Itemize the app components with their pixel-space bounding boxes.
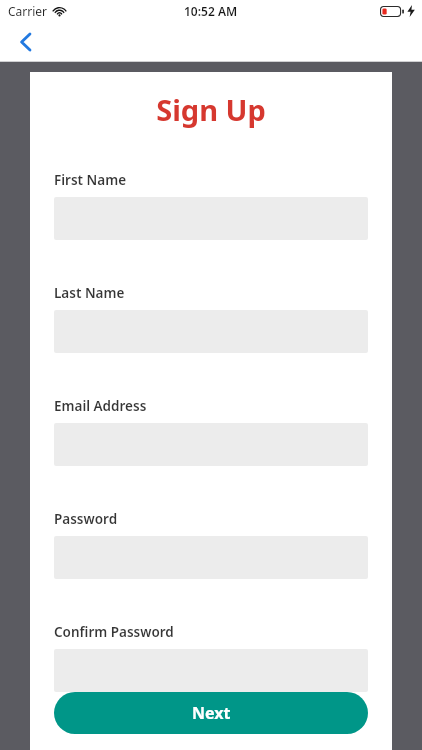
staticText: First Name: [54, 171, 127, 189]
staticText: Email Address: [54, 397, 147, 415]
staticText: Sign Up: [30, 90, 392, 129]
staticText: Next: [192, 702, 231, 724]
staticText: Confirm Password: [54, 623, 174, 641]
staticText: Carrier: [8, 3, 48, 19]
button[interactable]: Next: [54, 692, 368, 734]
staticText: Last Name: [54, 284, 125, 302]
staticText: Password: [54, 510, 118, 528]
staticText: 10:52 AM: [184, 3, 238, 19]
button[interactable]: Back: [6, 22, 46, 62]
